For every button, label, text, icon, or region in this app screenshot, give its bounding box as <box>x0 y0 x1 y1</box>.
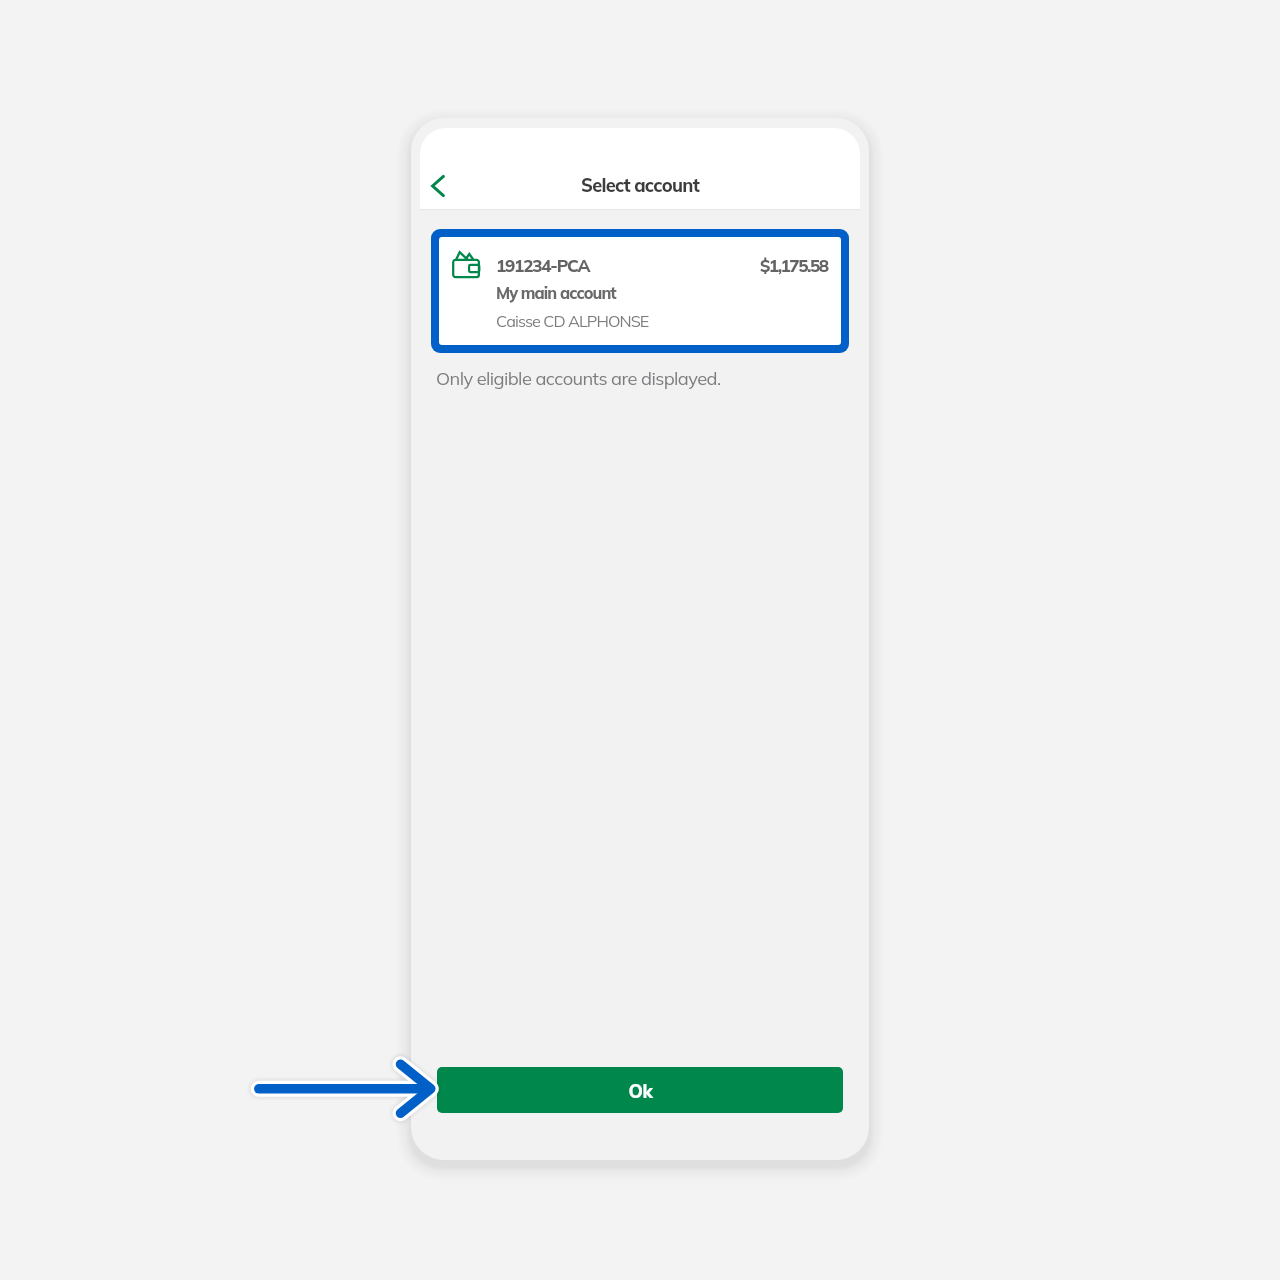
button[interactable]: Ok <box>437 1067 843 1113</box>
staticText: Caisse CD ALPHONSE <box>496 311 649 331</box>
button[interactable]: Back <box>420 164 460 208</box>
staticText: Ok <box>628 1080 653 1103</box>
staticText: $1,175.58 <box>760 255 828 277</box>
staticText: Select account <box>581 174 700 197</box>
staticText: 191234-PCA <box>496 255 590 277</box>
staticText: My main account <box>496 283 616 303</box>
staticText: Only eligible accounts are displayed. <box>436 367 721 390</box>
button[interactable]: 191234-PCA <box>431 229 849 353</box>
